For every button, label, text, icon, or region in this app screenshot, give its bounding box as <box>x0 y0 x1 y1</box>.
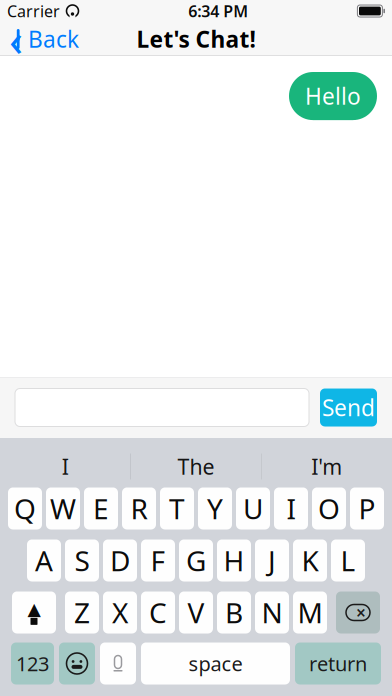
button[interactable]: U <box>236 487 270 529</box>
button[interactable]: H <box>217 539 251 581</box>
staticText: U <box>243 490 263 527</box>
button[interactable]: space <box>141 642 290 684</box>
staticText: X <box>112 594 128 631</box>
staticText: D <box>110 542 130 579</box>
staticText: 6:34 PM <box>188 0 248 22</box>
staticText: M <box>297 594 322 631</box>
button[interactable]: F <box>141 539 175 581</box>
staticText: J <box>268 542 276 579</box>
staticText: P <box>358 490 375 527</box>
staticText: F <box>150 542 165 579</box>
button[interactable]: Q <box>8 487 42 529</box>
button[interactable]: P <box>350 487 384 529</box>
staticText: ▲ <box>27 599 40 619</box>
staticText: I <box>62 452 69 481</box>
staticText: Z <box>74 594 90 631</box>
button[interactable]: S <box>65 539 99 581</box>
staticText: A <box>35 542 53 579</box>
staticText: Let's Chat! <box>136 24 255 54</box>
button[interactable]: E <box>84 487 118 529</box>
button[interactable]: Send <box>320 388 377 426</box>
button[interactable]: Dictate <box>100 642 136 684</box>
staticText: E <box>93 490 109 527</box>
staticText: ‹ <box>9 9 23 69</box>
button[interactable]: A <box>27 539 61 581</box>
staticText: O <box>318 490 340 527</box>
staticText: S <box>74 542 89 579</box>
staticText: Q <box>14 490 36 527</box>
staticText: space <box>188 650 242 677</box>
button[interactable]: Shift <box>12 591 56 633</box>
button[interactable]: I <box>0 445 130 487</box>
button[interactable]: return <box>295 642 381 684</box>
button[interactable]: J <box>255 539 289 581</box>
staticText: I <box>286 490 295 527</box>
staticText: L <box>340 542 355 579</box>
staticText: Hello <box>305 81 361 111</box>
button[interactable]: L <box>331 539 365 581</box>
button[interactable]: G <box>179 539 213 581</box>
staticText: 123 <box>16 650 49 677</box>
button[interactable]: W <box>46 487 80 529</box>
staticText: K <box>301 542 318 579</box>
button[interactable]: M <box>293 591 327 633</box>
button[interactable]: 123 <box>11 642 54 684</box>
button[interactable]: X <box>103 591 137 633</box>
staticText: C <box>149 594 167 631</box>
button[interactable]: K <box>293 539 327 581</box>
button[interactable]: O <box>312 487 346 529</box>
button[interactable]: N <box>255 591 289 633</box>
button[interactable]: Y <box>198 487 232 529</box>
staticText: B <box>225 594 243 631</box>
button[interactable]: T <box>160 487 194 529</box>
button[interactable]: D <box>103 539 137 581</box>
button[interactable]: Delete <box>336 591 380 633</box>
button[interactable]: Emoji <box>59 642 95 684</box>
staticText: H <box>223 542 244 579</box>
staticText: R <box>130 490 147 527</box>
button[interactable]: R <box>122 487 156 529</box>
staticText: Back <box>28 24 79 54</box>
button[interactable]: I <box>274 487 308 529</box>
staticText: I'm <box>311 452 342 481</box>
button[interactable]: Z <box>65 591 99 633</box>
staticText: Send <box>322 392 375 422</box>
staticText: The <box>177 452 214 481</box>
staticText: N <box>261 594 282 631</box>
staticText: Y <box>207 490 223 527</box>
staticText: Carrier <box>7 0 60 22</box>
staticText: W <box>50 490 76 527</box>
button[interactable]: I'm <box>262 445 392 487</box>
button[interactable]: The <box>131 445 261 487</box>
staticText: G <box>186 542 206 579</box>
staticText: return <box>309 650 367 677</box>
staticText: T <box>169 490 185 527</box>
staticText: V <box>187 594 204 631</box>
staticText: × <box>356 601 366 624</box>
button[interactable]: V <box>179 591 213 633</box>
button[interactable]: B <box>217 591 251 633</box>
button[interactable]: C <box>141 591 175 633</box>
button[interactable]: ‹ <box>0 19 87 59</box>
